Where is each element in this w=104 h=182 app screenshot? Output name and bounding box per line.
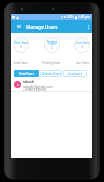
staticText: Total Users bbox=[14, 41, 28, 45]
staticText: +919812345678 bbox=[23, 88, 47, 92]
staticText: 5 bbox=[20, 45, 22, 49]
staticText: Pending Users bbox=[42, 61, 61, 65]
staticText: r bbox=[17, 82, 19, 88]
staticText: 2 bbox=[51, 46, 53, 50]
staticText: Refresh Users bbox=[42, 72, 61, 76]
button[interactable]: Refresh Users bbox=[40, 70, 62, 77]
staticText: Live Users bbox=[68, 72, 82, 76]
button[interactable]: More options bbox=[84, 20, 92, 33]
staticText: Total Users bbox=[19, 72, 35, 76]
button[interactable]: Open navigation menu bbox=[13, 20, 24, 33]
button[interactable]: Total Users bbox=[14, 70, 39, 77]
staticText: Live Users bbox=[76, 61, 89, 65]
staticText: 1:25 pm bbox=[78, 15, 91, 19]
staticText: Pending Users bbox=[45, 40, 59, 46]
button[interactable]: r bbox=[11, 79, 92, 91]
staticText: Manage Users bbox=[26, 24, 58, 30]
staticText: rakesh@gmail.com bbox=[23, 84, 53, 88]
staticText: 33% bbox=[67, 15, 74, 19]
staticText: Live Users bbox=[76, 41, 89, 45]
button[interactable]: Live Users bbox=[63, 70, 87, 77]
staticText: 3 bbox=[81, 45, 83, 49]
staticText: rakesh bbox=[23, 80, 34, 84]
staticText: Total Users bbox=[14, 61, 28, 65]
